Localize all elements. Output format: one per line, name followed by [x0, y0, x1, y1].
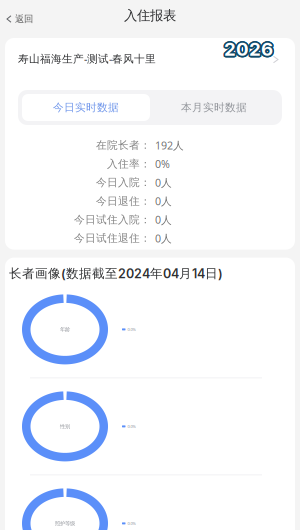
staticText: 寿山福海生产-测试-春风十里 — [18, 51, 156, 66]
staticText: 0人 — [155, 231, 172, 245]
staticText: 2026 — [223, 39, 272, 61]
staticText: 本月实时数据 — [181, 101, 247, 114]
button[interactable]: 本月实时数据 — [150, 94, 278, 121]
staticText: 2026 — [223, 39, 272, 62]
button[interactable]: 今日实时数据 — [22, 94, 150, 121]
staticText: 2026 — [224, 39, 273, 62]
staticText: 2026 — [225, 38, 274, 61]
staticText: 长者画像(数据截至2024年04月14日) — [9, 266, 223, 281]
staticText: 今日入院： — [96, 176, 151, 189]
staticText: 0.0% — [127, 521, 135, 526]
staticText: 今日退住： — [96, 194, 151, 208]
staticText: 性别 — [60, 423, 70, 430]
staticText: 今日试住退住： — [74, 232, 151, 245]
staticText: 2026 — [223, 37, 272, 59]
staticText: 192人 — [155, 138, 184, 152]
staticText: 2026 — [225, 37, 274, 59]
staticText: 2026 — [225, 37, 274, 60]
button[interactable]: 返回 — [0, 6, 43, 32]
staticText: 0人 — [155, 194, 172, 208]
staticText: 2026 — [223, 36, 272, 59]
staticText: 今日实时数据 — [53, 101, 119, 114]
staticText: 返回 — [15, 13, 33, 25]
staticText: 0% — [155, 157, 170, 171]
staticText: 2026 — [222, 37, 271, 60]
staticText: 2026 — [224, 36, 273, 59]
staticText: 2026 — [225, 39, 274, 61]
staticText: 2026 — [226, 38, 275, 60]
staticText: 2026 — [224, 38, 273, 60]
staticText: 在院长者： — [96, 139, 151, 152]
staticText: 0人 — [155, 213, 172, 227]
staticText: 入住报表 — [124, 7, 176, 24]
staticText: 2026 — [222, 38, 271, 61]
staticText: 2026 — [225, 39, 274, 62]
staticText: 0.0% — [127, 327, 135, 332]
staticText: 入住率： — [107, 157, 151, 170]
staticText: 0.0% — [127, 424, 135, 429]
button[interactable]: 寿山福海生产-测试-春风十里 — [5, 38, 295, 90]
staticText: 今日试住入院： — [74, 213, 151, 226]
staticText: 照护等级 — [55, 520, 75, 527]
staticText: 年龄 — [60, 326, 70, 333]
staticText: 0人 — [155, 175, 172, 190]
staticText: 2026 — [222, 38, 271, 60]
staticText: 2026 — [225, 36, 274, 59]
